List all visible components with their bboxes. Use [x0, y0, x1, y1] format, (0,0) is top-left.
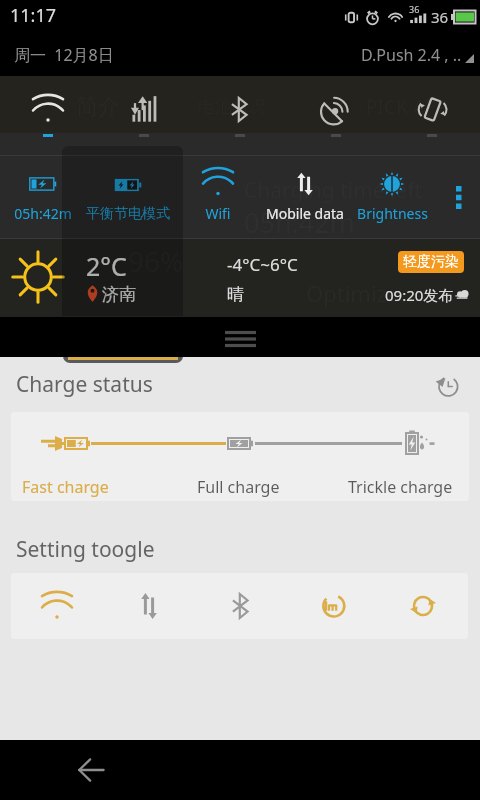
button[interactable]: Screen timeout: [286, 573, 377, 639]
button[interactable]: Sync: [377, 573, 468, 639]
staticText: Brightness: [357, 204, 428, 223]
button[interactable]: Wi-Fi: [11, 573, 103, 639]
button[interactable]: Mobile data: [103, 573, 195, 639]
staticText: Trickle charge: [348, 476, 453, 498]
staticText: 11:17: [10, 3, 57, 28]
staticText: Mobile data: [266, 204, 344, 223]
button[interactable]: Bluetooth: [195, 573, 286, 639]
button[interactable]: Bluetooth: [192, 76, 288, 155]
button[interactable]: 2°C: [0, 238, 480, 317]
staticText: Charging time left: [244, 176, 423, 205]
button[interactable]: Wifi: [171, 156, 265, 238]
button[interactable]: 平衡节电模式: [85, 156, 171, 238]
staticText: -4°C~6°C: [227, 253, 298, 276]
staticText: 平衡节电模式: [86, 205, 170, 223]
staticText: 09:20发布: [385, 285, 454, 305]
button[interactable]: Mobile data: [96, 76, 192, 155]
staticText: 电池概况: [198, 96, 266, 117]
staticText: 轻度污染: [403, 253, 459, 271]
staticText: 济南: [102, 284, 136, 305]
staticText: Wifi: [205, 204, 231, 223]
staticText: Full charge: [197, 476, 280, 498]
staticText: 周一 12月8日: [14, 44, 114, 66]
button[interactable]: [225, 331, 256, 344]
button[interactable]: [62, 146, 183, 316]
staticText: 2°C: [86, 249, 127, 283]
staticText: 36: [409, 3, 420, 15]
staticText: 05h:42m: [244, 204, 355, 241]
button[interactable]: GPS: [288, 76, 384, 155]
staticText: Setting toogle: [16, 535, 155, 564]
button[interactable]: Back: [70, 749, 112, 791]
button[interactable]: More options: [439, 156, 480, 238]
button[interactable]: Auto rotate: [384, 76, 480, 155]
staticText: Optimize: [306, 278, 400, 308]
staticText: 晴: [227, 284, 244, 305]
button[interactable]: Wi-Fi: [0, 76, 96, 155]
button[interactable]: History: [430, 368, 464, 402]
button[interactable]: 05h:42m: [0, 156, 85, 238]
staticText: 05h:42m: [14, 204, 72, 223]
staticText: Charge status: [16, 370, 153, 399]
button[interactable]: Mobile data: [265, 156, 345, 238]
button[interactable]: Brightness: [345, 156, 439, 238]
button[interactable]: 轻度污染: [403, 253, 459, 271]
staticText: D.Push 2.4 , ..: [361, 44, 462, 66]
button[interactable]: Fast charge: [11, 412, 469, 501]
staticText: Fast charge: [22, 476, 109, 498]
staticText: PICK APP: [366, 94, 448, 120]
staticText: 36: [431, 7, 449, 27]
